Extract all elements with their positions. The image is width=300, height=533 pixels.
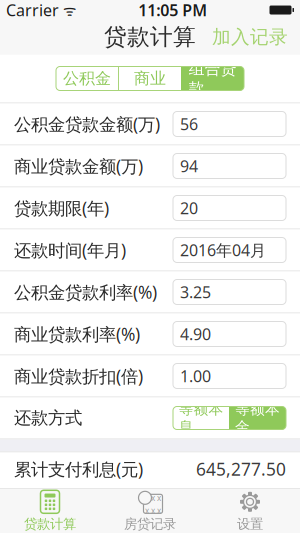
staticText: 还款时间(年月): [14, 238, 126, 261]
staticText: 公积金贷款利率(%): [14, 280, 157, 303]
staticText: 还款方式: [14, 407, 82, 429]
button[interactable]: 等额本金: [229, 406, 286, 429]
button[interactable]: 公积金: [56, 66, 118, 90]
staticText: 商业贷款金额(万): [14, 154, 143, 177]
staticText: 商业贷款利率(%): [14, 322, 140, 345]
staticText: 11:05 PM: [138, 0, 207, 21]
button[interactable]: 设置: [200, 489, 300, 533]
staticText: 4.90: [180, 323, 211, 345]
staticText: x: [151, 505, 155, 516]
staticText: 设置: [237, 516, 263, 532]
staticText: x: [151, 493, 155, 503]
staticText: 商业: [134, 69, 166, 88]
staticText: x: [157, 505, 161, 516]
staticText: 2016年04月: [180, 239, 266, 261]
staticText: x: [157, 493, 161, 503]
staticText: 贷款计算: [104, 23, 196, 51]
staticText: 20: [180, 197, 198, 219]
staticText: x: [145, 505, 149, 516]
button[interactable]: 加入记录: [204, 19, 296, 54]
staticText: Carrier: [6, 0, 59, 21]
staticText: 公积金贷款金额(万): [14, 112, 160, 135]
button[interactable]: x: [100, 489, 200, 533]
staticText: 3.25: [180, 281, 211, 303]
staticText: 56: [180, 113, 198, 135]
staticText: 645,277.50: [196, 457, 286, 480]
staticText: 94: [180, 155, 198, 177]
staticText: 房贷记录: [124, 516, 176, 532]
button[interactable]: 等额本息: [173, 406, 229, 429]
staticText: x: [145, 493, 149, 503]
staticText: 商业贷款折扣(倍): [14, 364, 143, 387]
staticText: 贷款计算: [24, 516, 76, 532]
button[interactable]: 组合贷款: [181, 66, 244, 90]
staticText: 公积金: [63, 69, 111, 88]
staticText: ᯤ: [59, 0, 76, 20]
staticText: 1.00: [180, 365, 211, 387]
staticText: 贷款期限(年): [14, 196, 109, 219]
button[interactable]: 贷款计算: [0, 489, 100, 533]
staticText: 组合贷款: [188, 59, 236, 98]
staticText: 累计支付利息(元): [14, 457, 143, 480]
staticText: 等额本金: [235, 400, 280, 436]
staticText: 加入记录: [212, 25, 288, 48]
button[interactable]: 商业: [119, 66, 181, 90]
staticText: 等额本息: [178, 400, 223, 436]
